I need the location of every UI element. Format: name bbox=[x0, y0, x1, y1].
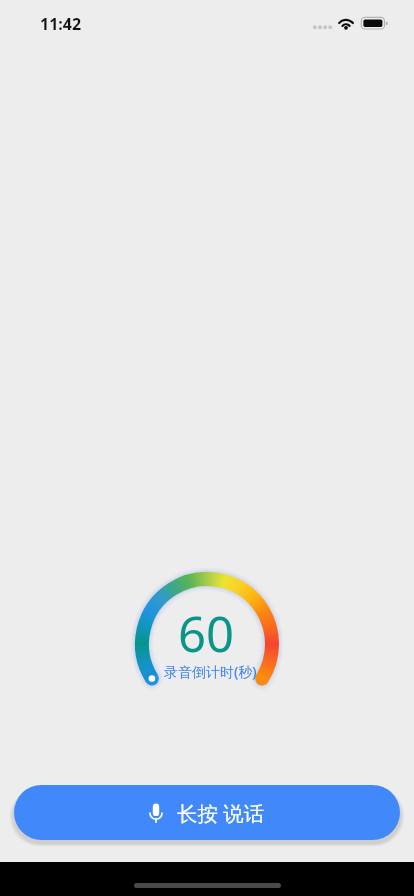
staticText: 11:42 bbox=[40, 13, 82, 35]
other: Microphone bbox=[149, 803, 163, 823]
staticText: 长按 说话 bbox=[177, 799, 265, 827]
button[interactable]: Microphone bbox=[14, 785, 400, 840]
other: Status icons bbox=[310, 12, 392, 36]
staticText: 录音倒计时(秒) bbox=[164, 662, 257, 681]
staticText: 60 bbox=[178, 600, 235, 667]
